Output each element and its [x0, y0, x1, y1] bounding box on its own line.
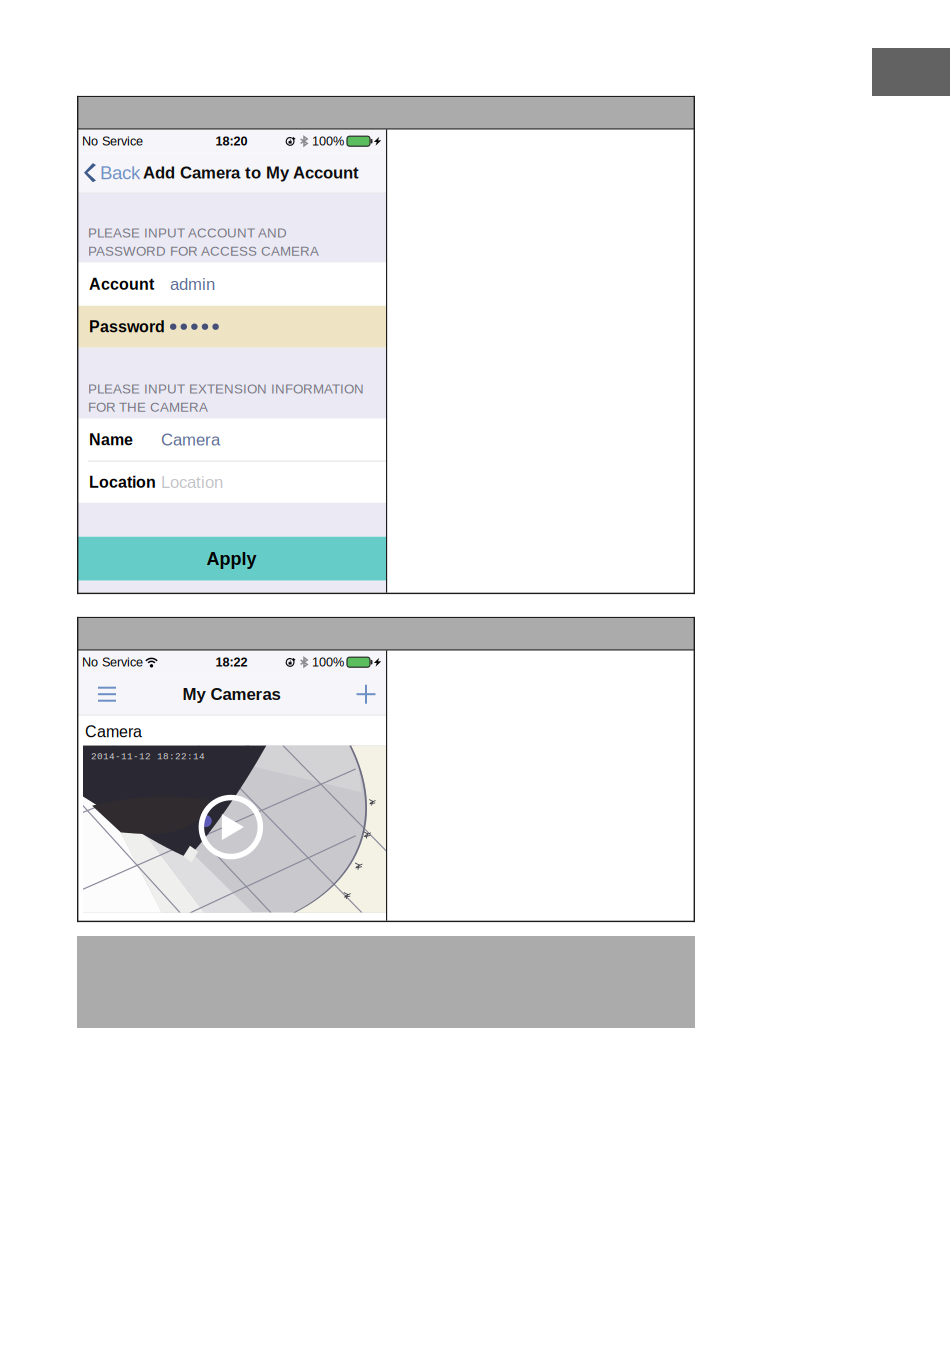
- staticText: Camera: [161, 430, 220, 449]
- staticText: My Cameras: [182, 685, 280, 704]
- staticText: PLEASE INPUT EXTENSION INFORMATION: [88, 381, 364, 396]
- staticText: PLEASE INPUT ACCOUNT AND: [88, 225, 287, 240]
- staticText: Camera: [85, 723, 142, 741]
- staticText: 100%: [312, 134, 344, 148]
- staticText: 18:22: [215, 655, 247, 669]
- staticText: 18:20: [215, 134, 247, 148]
- staticText: Name: [89, 431, 133, 449]
- staticText: Apply: [206, 549, 256, 569]
- button[interactable]: Back: [77, 153, 143, 193]
- staticText: Account: [89, 275, 154, 293]
- staticText: Add Camera to My Account: [143, 163, 359, 182]
- staticText: admin: [170, 275, 215, 293]
- staticText: No Service: [82, 134, 143, 148]
- staticText: Location: [89, 473, 156, 491]
- staticText: Password: [89, 318, 165, 336]
- button[interactable]: Add camera: [346, 674, 386, 715]
- staticText: 2014-11-12 18:22:14: [91, 752, 205, 762]
- staticText: No Service: [82, 655, 143, 669]
- staticText: 100%: [312, 655, 344, 669]
- staticText: FOR THE CAMERA: [88, 400, 208, 415]
- staticText: Location: [161, 473, 223, 491]
- staticText: Back: [100, 162, 140, 183]
- button[interactable]: Apply: [77, 537, 386, 581]
- staticText: PASSWORD FOR ACCESS CAMERA: [88, 244, 319, 259]
- button[interactable]: Menu: [85, 674, 129, 715]
